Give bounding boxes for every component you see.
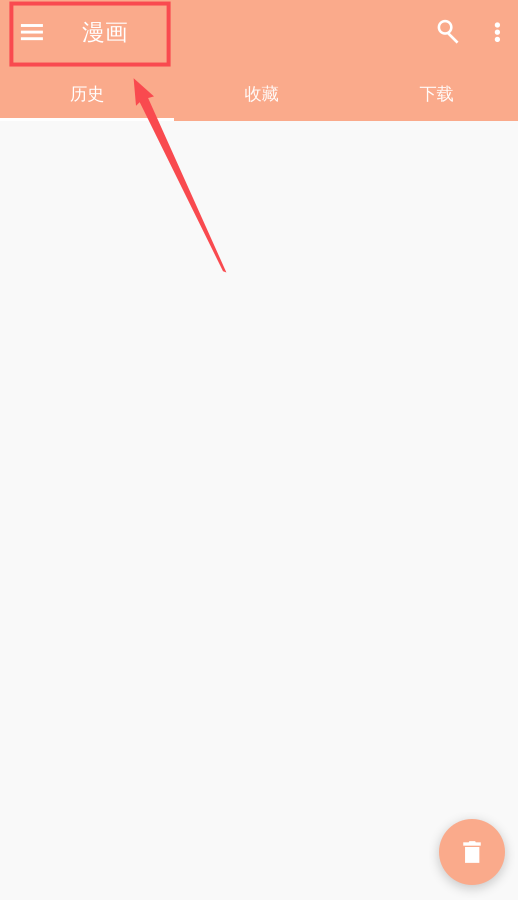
button[interactable]: Open navigation drawer [5, 0, 59, 65]
button[interactable]: 下载 [349, 66, 518, 121]
button[interactable]: Clear history [439, 819, 505, 885]
button[interactable]: 收藏 [174, 66, 348, 121]
staticText: 漫画 [82, 18, 128, 46]
button[interactable]: 历史 [0, 66, 174, 121]
button[interactable]: Search [425, 0, 471, 65]
button[interactable]: More options [477, 0, 517, 65]
staticText: 收藏 [244, 83, 278, 105]
staticText: 下载 [419, 83, 453, 105]
staticText: 历史 [70, 83, 104, 105]
